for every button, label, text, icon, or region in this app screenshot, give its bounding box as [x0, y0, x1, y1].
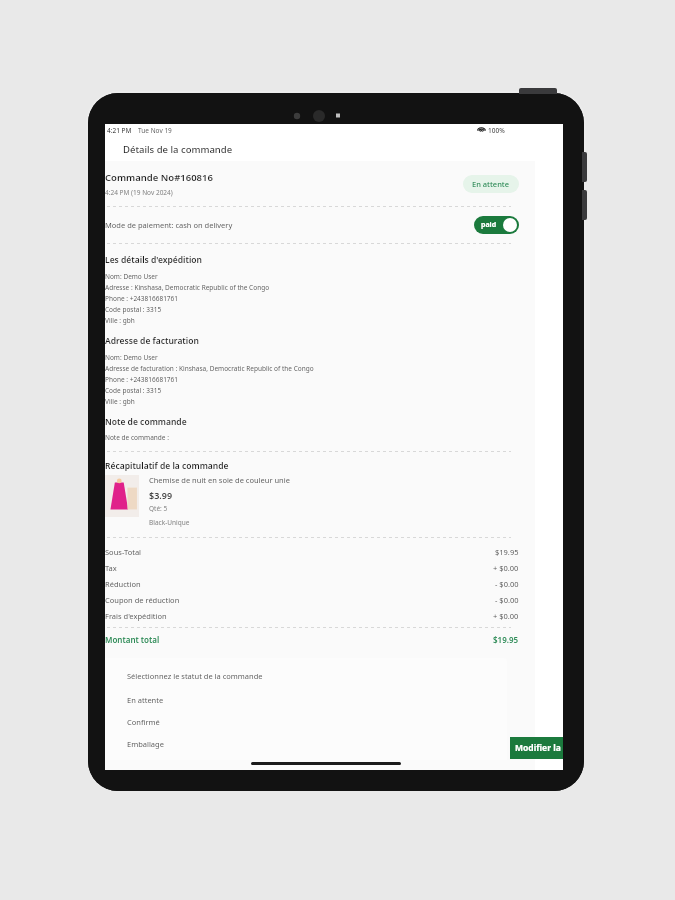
staticText: paid — [481, 220, 497, 230]
staticText: Montant total — [105, 634, 493, 645]
staticText: - $0.00 — [495, 579, 519, 589]
staticText: Adresse de facturation — [105, 335, 199, 347]
staticText: Phone : +243816681761 — [105, 294, 179, 303]
staticText: Contact : +243816681761 — [129, 696, 206, 705]
button[interactable]: Confirmé — [127, 717, 507, 727]
staticText: Récapitulatif de la commande — [105, 460, 229, 472]
staticText: Phone : +243816681761 — [105, 375, 179, 384]
staticText: 4:21 PM — [107, 126, 132, 135]
other: Volume up — [582, 152, 587, 182]
other: Power — [519, 88, 557, 94]
staticText: En attente — [127, 695, 164, 705]
staticText: En attente — [472, 179, 510, 189]
staticText: Emballage — [127, 739, 164, 749]
staticText: Tax — [105, 563, 493, 573]
staticText: Code postal : 3315 — [105, 305, 162, 314]
staticText: 100% — [488, 126, 505, 135]
staticText: Sous-Total — [105, 547, 495, 557]
staticText: Tue Nov 19 — [138, 126, 172, 135]
staticText: - $0.00 — [495, 595, 519, 605]
staticText: Note de commande : — [105, 433, 169, 442]
button[interactable]: En attente — [127, 695, 507, 705]
staticText: Sélectionnez le statut de la commande — [127, 671, 263, 681]
staticText: Les détails d'expédition — [105, 254, 202, 266]
staticText: $19.95 — [493, 634, 519, 645]
staticText: Détails de la commande — [123, 143, 233, 156]
staticText: Commande No#160816 — [105, 171, 213, 184]
button[interactable]: En attente — [463, 175, 519, 193]
staticText: Réduction — [105, 579, 495, 589]
staticText: Code postal : 3315 — [105, 386, 162, 395]
staticText: $3.99 — [149, 489, 173, 501]
button[interactable]: paid — [474, 216, 519, 234]
staticText: Adresse de facturation : Kinshasa, Democ… — [105, 364, 314, 373]
staticText: Black-Unique — [149, 518, 190, 527]
staticText: Chemise de nuit en soie de couleur unie — [149, 475, 290, 485]
other: Volume down — [582, 190, 587, 220]
button[interactable]: Modifier la stat — [510, 737, 563, 759]
staticText: + $0.00 — [493, 611, 519, 621]
staticText: Frais d'expédition — [105, 611, 493, 621]
button[interactable]: Emballage — [127, 739, 507, 749]
staticText: 4:24 PM (19 Nov 2024) — [105, 188, 173, 197]
staticText: Nom: Demo User — [105, 272, 158, 281]
button[interactable]: Chemise de nuit en soie de couleur unie — [105, 475, 519, 527]
staticText: Nom: Demo User — [105, 353, 158, 362]
staticText: Ville : gbh — [105, 316, 135, 325]
staticText: Mode de paiement: cash on delivery — [105, 220, 474, 230]
staticText: Demo User — [129, 674, 164, 683]
staticText: Coupon de réduction — [105, 595, 495, 605]
staticText: Qté: 5 — [149, 504, 168, 513]
staticText: Modifier la stat — [515, 742, 563, 754]
staticText: Confirmé — [127, 717, 160, 727]
staticText: + $0.00 — [493, 563, 519, 573]
staticText: Ville : gbh — [105, 397, 135, 406]
staticText: $19.95 — [495, 547, 519, 557]
staticText: Adresse : Kinshasa, Democratic Republic … — [105, 283, 270, 292]
staticText: Note de commande — [105, 416, 187, 428]
